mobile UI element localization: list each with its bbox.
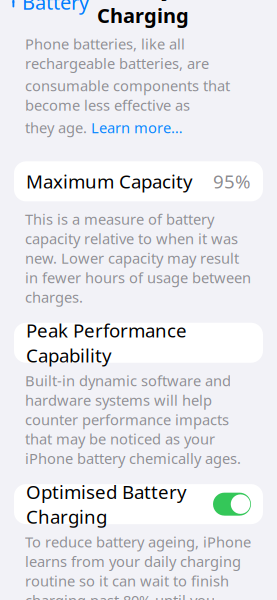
staticText: Battery	[22, 0, 89, 15]
button[interactable]: Learn more…	[91, 118, 183, 137]
staticText: Learn more…	[91, 118, 183, 137]
button[interactable]: Battery	[0, 0, 89, 21]
button[interactable]: Optimised Battery Charging	[0, 484, 277, 524]
staticText: Phone batteries, like all rechargeable b…	[25, 34, 209, 73]
staticText: 95%	[213, 169, 251, 194]
staticText: Maximum Capacity	[26, 169, 193, 194]
staticText: they age.	[25, 118, 91, 137]
staticText: To reduce battery ageing, iPhone learns …	[25, 532, 251, 600]
button[interactable]: Peak Performance Capability	[0, 323, 277, 363]
staticText: consumable components that become less e…	[25, 76, 230, 115]
staticText: This is a measure of battery capacity re…	[25, 209, 251, 307]
staticText: Battery Health & Charging	[97, 0, 264, 28]
staticText: Optimised Battery Charging	[26, 479, 187, 529]
staticText: Peak Performance Capability	[26, 318, 187, 368]
staticText: Built-in dynamic software and hardware s…	[25, 371, 241, 468]
